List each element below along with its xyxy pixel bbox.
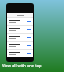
button[interactable] — [7, 50, 33, 57]
button[interactable] — [7, 18, 33, 25]
button[interactable] — [7, 34, 33, 41]
button[interactable] — [7, 26, 33, 33]
button[interactable] — [7, 13, 33, 17]
button[interactable] — [7, 42, 33, 49]
staticText: View all with one tap — [2, 63, 42, 68]
